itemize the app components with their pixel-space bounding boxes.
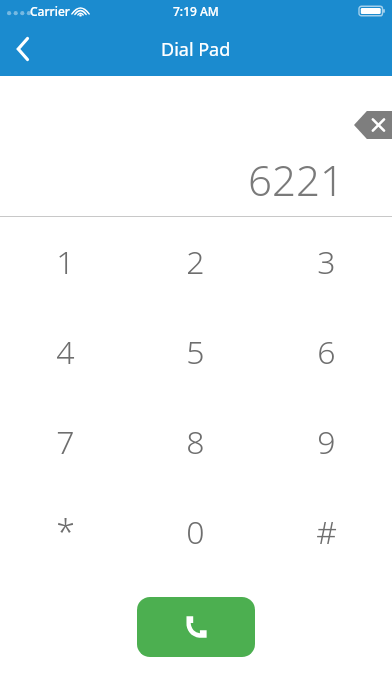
staticText: 6221 — [248, 151, 344, 208]
button[interactable]: # — [261, 487, 392, 577]
staticText: 0 — [186, 510, 205, 554]
button[interactable]: 7 — [0, 397, 130, 487]
staticText: * — [56, 509, 75, 555]
button[interactable]: 6 — [261, 307, 392, 397]
staticText: 4 — [56, 330, 75, 374]
staticText: 9 — [317, 420, 336, 464]
staticText: 7:19 AM — [173, 3, 219, 19]
staticText: # — [316, 510, 337, 554]
button[interactable]: Backspace — [354, 111, 392, 139]
staticText: Dial Pad — [161, 37, 231, 62]
staticText: Carrier — [30, 3, 70, 19]
staticText: 8 — [186, 420, 205, 464]
button[interactable]: 5 — [130, 307, 261, 397]
staticText: 1 — [56, 240, 75, 284]
button[interactable]: 8 — [130, 397, 261, 487]
staticText: 2 — [186, 240, 205, 284]
button[interactable]: 0 — [130, 487, 261, 577]
button[interactable]: Call — [137, 597, 255, 657]
button[interactable]: 2 — [130, 217, 261, 307]
staticText: 6 — [317, 330, 336, 374]
button[interactable]: 1 — [0, 217, 130, 307]
button[interactable]: * — [0, 487, 130, 577]
staticText: 5 — [186, 330, 205, 374]
button[interactable]: 3 — [261, 217, 392, 307]
staticText: 3 — [317, 240, 336, 284]
button[interactable]: 9 — [261, 397, 392, 487]
button[interactable]: 4 — [0, 307, 130, 397]
button[interactable]: Back — [0, 26, 46, 72]
staticText: 7 — [56, 420, 75, 464]
